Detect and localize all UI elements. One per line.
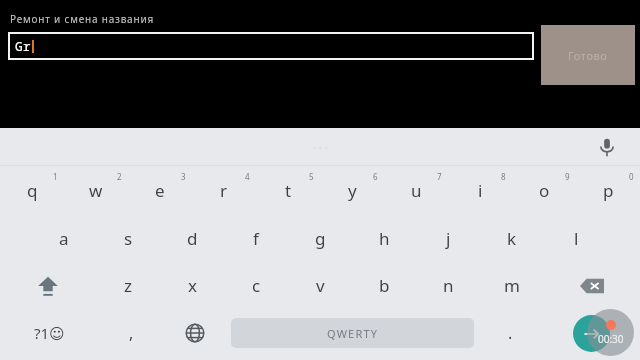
staticText: q: [27, 179, 38, 202]
button[interactable]: e: [128, 166, 192, 215]
button[interactable]: f: [224, 215, 288, 262]
button[interactable]: ,: [99, 309, 163, 357]
staticText: u: [411, 179, 422, 202]
button[interactable]: v: [288, 262, 352, 309]
staticText: 4: [245, 171, 250, 182]
staticText: c: [252, 274, 261, 297]
staticText: e: [155, 179, 165, 202]
staticText: w: [89, 179, 103, 202]
button[interactable]: s: [96, 215, 160, 262]
button[interactable]: .: [479, 309, 542, 357]
button[interactable]: y: [320, 166, 384, 215]
staticText: 5: [309, 171, 314, 182]
staticText: QWERTY: [327, 326, 379, 341]
staticText: Ремонт и смена названия: [10, 12, 154, 26]
staticText: l: [574, 227, 579, 250]
staticText: z: [124, 274, 132, 297]
staticText: v: [316, 274, 325, 297]
staticText: 00:30: [598, 332, 624, 346]
staticText: ?1☺: [34, 323, 65, 343]
button[interactable]: Change language: [163, 309, 226, 357]
staticText: d: [187, 227, 198, 250]
staticText: Готово: [568, 48, 608, 63]
button[interactable]: Backspace: [544, 262, 640, 309]
staticText: .: [508, 322, 513, 344]
staticText: o: [539, 179, 550, 202]
button[interactable]: l: [544, 215, 608, 262]
staticText: h: [379, 227, 390, 250]
button[interactable]: x: [160, 262, 224, 309]
button[interactable]: n: [416, 262, 480, 309]
staticText: f: [253, 227, 259, 250]
button[interactable]: b: [352, 262, 416, 309]
staticText: t: [285, 179, 292, 202]
button[interactable]: Shift: [0, 262, 96, 309]
button[interactable]: o: [512, 166, 576, 215]
staticText: b: [379, 274, 390, 297]
staticText: 7: [437, 171, 442, 182]
staticText: ,: [129, 322, 134, 344]
staticText: 6: [373, 171, 378, 182]
staticText: r: [220, 179, 228, 202]
button[interactable]: r: [192, 166, 256, 215]
button[interactable]: t: [256, 166, 320, 215]
staticText: n: [443, 274, 454, 297]
staticText: g: [315, 227, 326, 250]
button[interactable]: Готово: [541, 25, 635, 85]
button[interactable]: q: [0, 166, 64, 215]
button[interactable]: ?1☺: [0, 309, 99, 357]
button[interactable]: Voice input: [590, 130, 624, 164]
button[interactable]: w: [64, 166, 128, 215]
staticText: 1: [53, 171, 58, 182]
staticText: 8: [501, 171, 506, 182]
staticText: 0: [629, 171, 634, 182]
staticText: j: [446, 227, 451, 250]
button[interactable]: h: [352, 215, 416, 262]
button[interactable]: k: [480, 215, 544, 262]
button[interactable]: d: [160, 215, 224, 262]
button[interactable]: i: [448, 166, 512, 215]
button[interactable]: a: [32, 215, 96, 262]
staticText: Gr: [15, 37, 31, 55]
staticText: k: [507, 227, 517, 250]
button[interactable]: Gr: [8, 32, 534, 60]
staticText: p: [603, 179, 614, 202]
staticText: a: [59, 227, 69, 250]
button[interactable]: Screen recorder: [587, 309, 634, 356]
staticText: 9: [565, 171, 570, 182]
button[interactable]: c: [224, 262, 288, 309]
staticText: m: [504, 274, 520, 297]
button[interactable]: m: [480, 262, 544, 309]
button[interactable]: p: [576, 166, 640, 215]
staticText: s: [124, 227, 133, 250]
button[interactable]: u: [384, 166, 448, 215]
staticText: i: [478, 179, 483, 202]
button[interactable]: QWERTY: [231, 318, 474, 348]
button[interactable]: g: [288, 215, 352, 262]
button[interactable]: z: [96, 262, 160, 309]
staticText: 2: [117, 171, 122, 182]
staticText: 3: [181, 171, 186, 182]
staticText: x: [188, 274, 197, 297]
staticText: y: [348, 179, 357, 202]
button[interactable]: j: [416, 215, 480, 262]
button[interactable]: Enter: [573, 315, 610, 352]
